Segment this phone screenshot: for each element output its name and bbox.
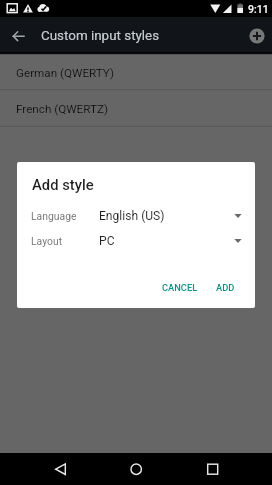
button[interactable]: German (QWERTY) (0, 54, 272, 90)
staticText: ADD (216, 282, 235, 293)
button[interactable]: ADD (208, 277, 243, 298)
button[interactable]: French (QWERTZ) (0, 90, 272, 127)
button[interactable]: Back (48, 457, 72, 481)
staticText: 9:11 (248, 3, 269, 15)
button[interactable]: Layout (17, 228, 255, 254)
staticText: English (US) (99, 209, 165, 223)
staticText: Add style (32, 176, 94, 193)
staticText: Language (31, 210, 77, 222)
staticText: CANCEL (162, 282, 198, 293)
staticText: French (QWERTZ) (16, 102, 108, 116)
staticText: Custom input styles (41, 28, 160, 44)
staticText: PC (99, 234, 115, 248)
button[interactable]: Add style (244, 23, 270, 49)
button[interactable]: Back (6, 23, 32, 49)
staticText: German (QWERTY) (16, 66, 115, 80)
button[interactable]: Language (17, 203, 255, 229)
button[interactable]: Recent apps (200, 457, 224, 481)
staticText: Layout (31, 235, 63, 247)
button[interactable]: Home (124, 457, 148, 481)
button[interactable]: CANCEL (154, 277, 206, 298)
